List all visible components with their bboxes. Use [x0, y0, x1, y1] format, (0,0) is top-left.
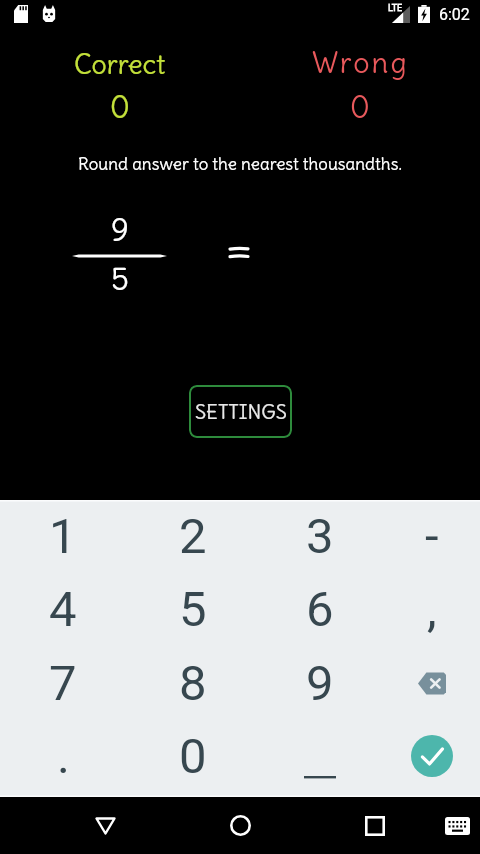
staticText: - [425, 508, 439, 565]
staticText: 6 [306, 581, 334, 638]
staticText: 3 [306, 508, 334, 565]
staticText: 0 [110, 88, 130, 126]
staticText: 2 [179, 508, 207, 565]
button[interactable]: Back [65, 797, 145, 854]
staticText: Round answer to the nearest thousandths. [78, 153, 402, 174]
button[interactable]: 8 [128, 649, 257, 723]
button[interactable]: Recent apps [335, 797, 415, 854]
staticText: , [427, 581, 437, 638]
staticText: . [57, 728, 70, 785]
staticText: 1 [49, 508, 77, 565]
staticText: 9 [111, 210, 129, 249]
staticText: 9 [306, 655, 334, 712]
button[interactable]: Switch keyboard [427, 797, 480, 854]
button[interactable]: - [376, 500, 480, 574]
button[interactable] [256, 723, 376, 797]
staticText: Correct [74, 47, 166, 81]
button[interactable]: 6 [256, 574, 376, 648]
button[interactable]: 2 [128, 500, 257, 574]
button[interactable]: 0 [128, 723, 257, 797]
button[interactable]: 9 [256, 649, 376, 723]
button[interactable]: 3 [256, 500, 376, 574]
staticText: 8 [179, 655, 207, 712]
button[interactable]: 4 [0, 574, 128, 648]
staticText: 6:02 [439, 5, 470, 24]
button[interactable] [376, 723, 480, 797]
button[interactable]: 7 [0, 649, 128, 723]
button[interactable]: 1 [0, 500, 128, 574]
button[interactable] [376, 649, 480, 723]
staticText: LTE [388, 3, 403, 14]
staticText: 0 [179, 728, 207, 785]
staticText: 4 [49, 581, 77, 638]
button[interactable]: Home [200, 797, 280, 854]
button[interactable]: SETTINGS [189, 385, 292, 438]
staticText: 5 [179, 581, 207, 638]
staticText: 0 [350, 88, 370, 126]
staticText: Wrong [312, 44, 409, 80]
staticText: 7 [49, 655, 77, 712]
button[interactable]: , [376, 574, 480, 648]
button[interactable]: 5 [128, 574, 257, 648]
button[interactable]: . [0, 723, 128, 797]
staticText: SETTINGS [195, 399, 287, 424]
staticText: 5 [111, 259, 129, 298]
